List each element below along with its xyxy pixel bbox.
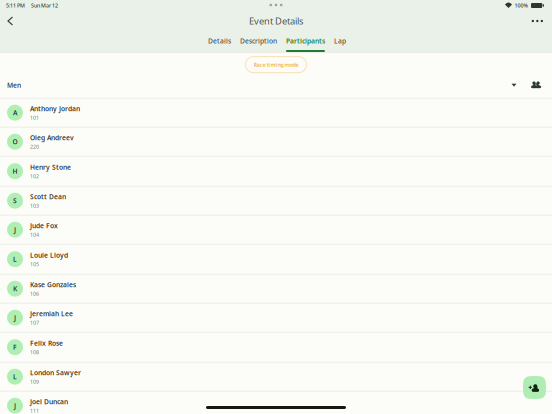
staticText: 102 bbox=[30, 173, 39, 180]
staticText: 111 bbox=[30, 407, 39, 414]
button[interactable]: Lap bbox=[334, 32, 346, 52]
button[interactable]: Participants bbox=[286, 32, 325, 52]
staticText: 104 bbox=[30, 231, 39, 238]
staticText: 106 bbox=[30, 290, 39, 297]
staticText: S bbox=[13, 196, 17, 205]
staticText: Sun Mar 12 bbox=[31, 2, 58, 9]
staticText: Kase Gonzales bbox=[30, 280, 76, 289]
button[interactable]: H bbox=[0, 157, 552, 187]
button[interactable]: Back bbox=[0, 11, 22, 31]
button[interactable]: J bbox=[0, 216, 552, 245]
staticText: H bbox=[12, 167, 17, 176]
button[interactable]: Race timing mode bbox=[245, 57, 306, 73]
button[interactable]: L bbox=[0, 245, 552, 275]
staticText: 109 bbox=[30, 378, 39, 385]
staticText: 5:11 PM bbox=[6, 2, 25, 9]
staticText: Felix Rose bbox=[30, 339, 63, 348]
staticText: J bbox=[14, 401, 16, 410]
button[interactable]: A bbox=[0, 99, 552, 128]
button[interactable]: Add participant bbox=[523, 376, 546, 399]
staticText: Henry Stone bbox=[30, 163, 71, 172]
button[interactable]: Sort bbox=[503, 73, 525, 97]
button[interactable]: Description bbox=[240, 32, 277, 52]
staticText: 103 bbox=[30, 202, 39, 209]
button[interactable]: O bbox=[0, 128, 552, 157]
staticText: A bbox=[13, 108, 17, 117]
staticText: O bbox=[12, 137, 17, 146]
staticText: Event Details bbox=[249, 15, 303, 27]
staticText: Men bbox=[7, 81, 21, 90]
button[interactable]: F bbox=[0, 333, 552, 363]
staticText: Race timing mode bbox=[253, 61, 298, 68]
staticText: Jude Fox bbox=[30, 221, 58, 230]
button[interactable]: Details bbox=[208, 32, 231, 52]
staticText: Lap bbox=[334, 37, 346, 45]
button[interactable]: J bbox=[0, 304, 552, 333]
staticText: Scott Dean bbox=[30, 192, 66, 201]
staticText: F bbox=[13, 343, 17, 352]
staticText: Anthony Jordan bbox=[30, 104, 80, 113]
staticText: Louie Lloyd bbox=[30, 251, 68, 260]
button[interactable]: J bbox=[0, 392, 552, 414]
staticText: Jeremiah Lee bbox=[30, 309, 73, 318]
staticText: 105 bbox=[30, 261, 39, 268]
staticText: Description bbox=[240, 37, 277, 45]
staticText: 220 bbox=[30, 143, 39, 150]
staticText: 101 bbox=[30, 114, 39, 121]
staticText: K bbox=[13, 284, 17, 293]
staticText: J bbox=[14, 225, 16, 234]
staticText: L bbox=[13, 255, 17, 264]
staticText: 100% bbox=[514, 2, 528, 9]
button[interactable]: S bbox=[0, 187, 552, 216]
button[interactable]: L bbox=[0, 363, 552, 392]
staticText: Details bbox=[208, 37, 231, 45]
staticText: London Sawyer bbox=[30, 368, 81, 377]
staticText: Joel Duncan bbox=[30, 397, 68, 406]
button[interactable]: More options bbox=[523, 12, 552, 30]
staticText: Participants bbox=[286, 37, 325, 45]
button[interactable]: Manage participants bbox=[525, 73, 547, 97]
staticText: Oleg Andreev bbox=[30, 133, 74, 142]
button[interactable]: K bbox=[0, 275, 552, 304]
staticText: 107 bbox=[30, 319, 39, 326]
staticText: L bbox=[13, 372, 17, 381]
staticText: 108 bbox=[30, 349, 39, 356]
staticText: J bbox=[14, 313, 16, 322]
